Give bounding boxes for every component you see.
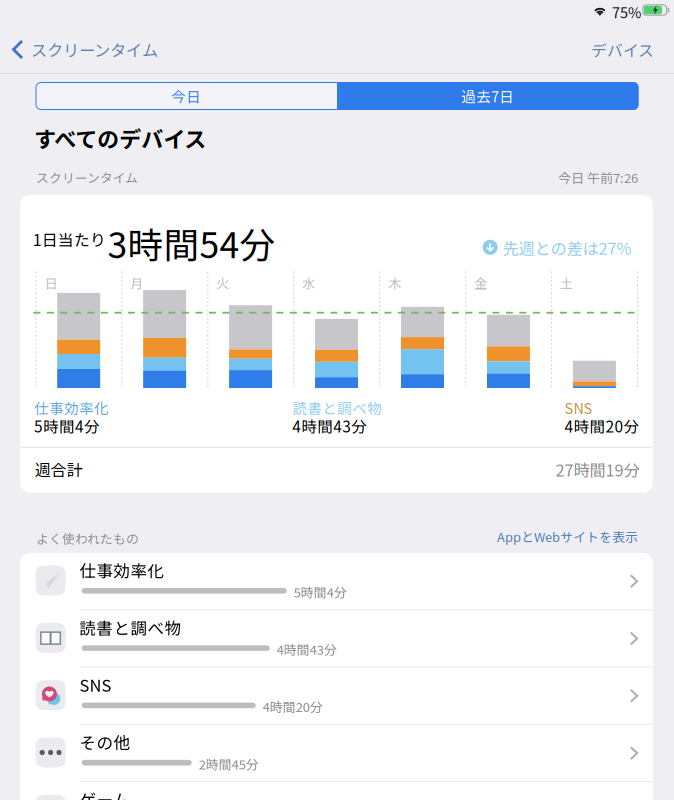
button[interactable]: 過去7日 bbox=[337, 82, 638, 110]
button[interactable]: ゲーム bbox=[20, 782, 653, 800]
staticText: デバイス bbox=[591, 38, 654, 61]
button[interactable]: 読書と調べ物 bbox=[20, 610, 653, 667]
button[interactable]: スクリーンタイム bbox=[0, 26, 168, 73]
button[interactable]: SNS bbox=[20, 668, 653, 724]
staticText: SNS bbox=[565, 397, 593, 418]
staticText: スクリーンタイム bbox=[31, 38, 158, 61]
staticText: 土 bbox=[560, 273, 573, 292]
staticText: 週合計 bbox=[35, 457, 83, 480]
staticText: すべてのデバイス bbox=[34, 122, 206, 154]
staticText: ゲーム bbox=[80, 787, 130, 800]
staticText: 仕事効率化 bbox=[80, 558, 165, 582]
staticText: 4時間43分 bbox=[277, 640, 337, 658]
staticText: 27時間19分 bbox=[555, 457, 639, 481]
staticText: 過去7日 bbox=[461, 85, 514, 106]
staticText: 2時間45分 bbox=[199, 754, 259, 773]
staticText: 火 bbox=[216, 273, 229, 292]
button[interactable]: その他 bbox=[20, 725, 653, 781]
staticText: 金 bbox=[474, 273, 487, 292]
button[interactable]: AppとWebサイトを表示 bbox=[497, 527, 638, 546]
staticText: 4時間20分 bbox=[263, 697, 323, 716]
staticText: 5時間4分 bbox=[294, 582, 347, 601]
staticText: 5時間4分 bbox=[34, 414, 100, 437]
staticText: 月 bbox=[130, 273, 143, 292]
staticText: 今日 bbox=[171, 85, 201, 106]
staticText: 4時間20分 bbox=[565, 414, 640, 437]
staticText: 木 bbox=[388, 273, 401, 292]
button[interactable]: デバイス bbox=[579, 26, 674, 73]
staticText: 75% bbox=[612, 1, 641, 22]
staticText: 仕事効率化 bbox=[34, 397, 109, 418]
staticText: 3時間54分 bbox=[107, 217, 275, 268]
staticText: 先週との差は27% bbox=[502, 236, 631, 259]
staticText: 水 bbox=[302, 273, 315, 292]
staticText: 1日当たり bbox=[33, 227, 106, 251]
staticText: 読書と調べ物 bbox=[80, 615, 182, 639]
staticText: SNS bbox=[80, 673, 112, 696]
staticText: 4時間43分 bbox=[292, 414, 367, 437]
staticText: 読書と調べ物 bbox=[292, 397, 382, 418]
staticText: 日 bbox=[44, 273, 57, 292]
button[interactable]: 仕事効率化 bbox=[20, 553, 653, 609]
staticText: AppとWebサイトを表示 bbox=[497, 527, 638, 546]
staticText: スクリーンタイム bbox=[36, 168, 138, 186]
staticText: その他 bbox=[80, 730, 131, 754]
button[interactable]: 今日 bbox=[35, 82, 337, 110]
staticText: 今日 午前7:26 bbox=[558, 168, 638, 187]
staticText: よく使われたもの bbox=[36, 529, 139, 547]
